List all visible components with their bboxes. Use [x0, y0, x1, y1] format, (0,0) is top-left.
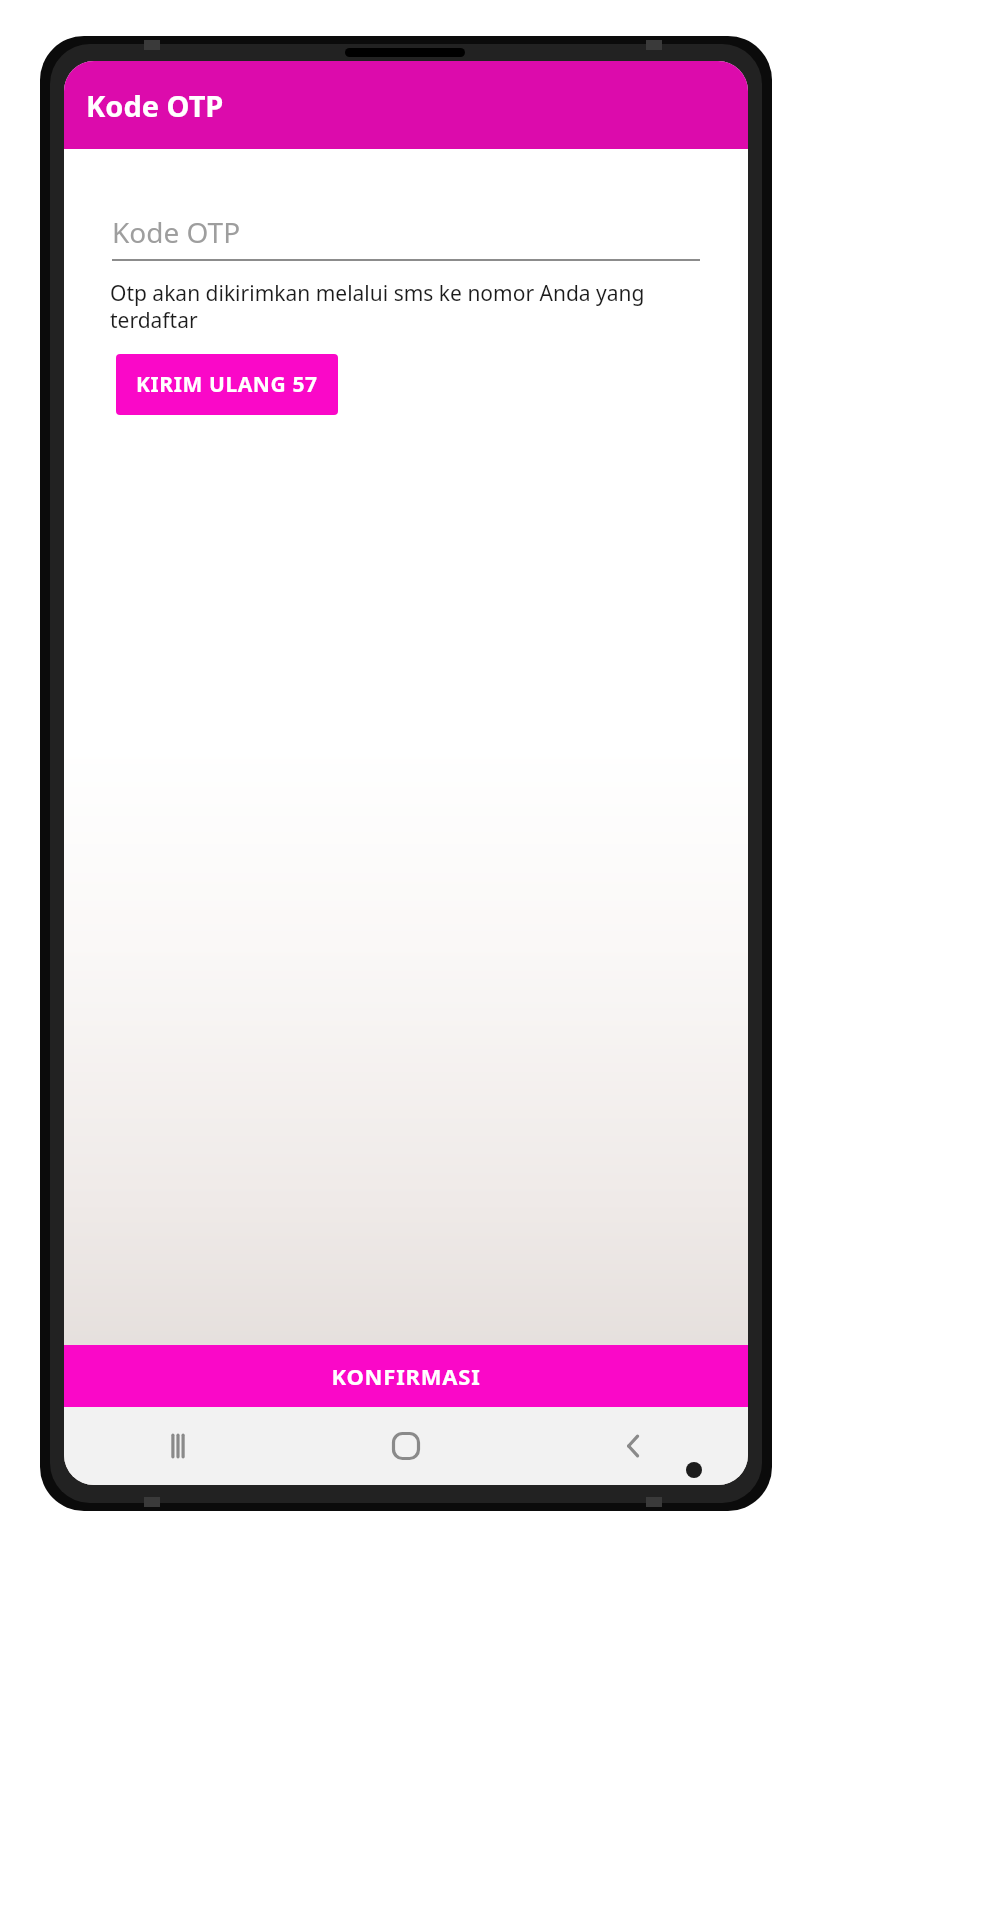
- button[interactable]: Recent apps: [64, 1407, 292, 1485]
- staticText: KIRIM ULANG 57: [136, 370, 318, 399]
- button[interactable]: Home: [292, 1407, 520, 1485]
- button[interactable]: Kode OTP: [112, 209, 700, 261]
- button[interactable]: KONFIRMASI: [64, 1345, 748, 1407]
- staticText: Kode OTP: [112, 213, 241, 251]
- staticText: Kode OTP: [86, 86, 224, 125]
- button[interactable]: Back: [520, 1407, 748, 1485]
- staticText: Otp akan dikirimkan melalui sms ke nomor…: [110, 279, 704, 334]
- button[interactable]: KIRIM ULANG 57: [116, 354, 338, 415]
- staticText: KONFIRMASI: [331, 1361, 481, 1391]
